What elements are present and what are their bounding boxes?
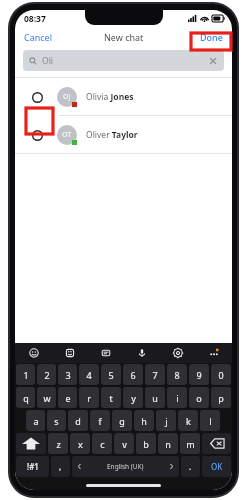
button[interactable]: s xyxy=(47,410,66,431)
button[interactable]: 7 xyxy=(145,364,165,385)
staticText: j xyxy=(165,415,168,427)
button[interactable]: w xyxy=(37,387,56,408)
button[interactable]: o xyxy=(189,387,209,408)
button[interactable]: r xyxy=(79,387,99,408)
button[interactable]: 3 xyxy=(58,364,77,385)
button[interactable]: f xyxy=(90,410,110,431)
staticText: m xyxy=(186,438,195,450)
button[interactable]: Settings xyxy=(160,343,196,363)
staticText: h xyxy=(141,415,147,427)
staticText: 0 xyxy=(218,369,224,381)
button[interactable]: !#1 xyxy=(16,456,49,477)
button[interactable]: Select Oliver Taylor xyxy=(15,116,232,153)
staticText: 9 xyxy=(196,369,202,381)
button[interactable]: a xyxy=(26,410,45,431)
staticText: Olivia Jones xyxy=(86,91,134,103)
staticText: z xyxy=(56,438,61,450)
button[interactable]: 0 xyxy=(211,364,231,385)
button[interactable]: y xyxy=(123,387,143,408)
button[interactable]: Clear search xyxy=(208,56,218,66)
staticText: 7 xyxy=(152,369,158,381)
staticText: p xyxy=(218,392,224,404)
staticText: . xyxy=(189,461,192,472)
staticText: g xyxy=(119,415,125,427)
other: Select Olivia Jones xyxy=(28,88,46,106)
staticText: 6 xyxy=(130,369,136,381)
button[interactable]: . xyxy=(181,456,200,477)
staticText: x xyxy=(78,438,83,450)
button[interactable]: Shift xyxy=(16,433,46,454)
staticText: r xyxy=(87,392,91,404)
staticText: n xyxy=(165,438,171,450)
button[interactable]: Done xyxy=(194,29,232,45)
staticText: a xyxy=(33,415,39,427)
staticText: OJ xyxy=(63,92,71,102)
button[interactable]: q xyxy=(16,387,35,408)
staticText: c xyxy=(100,438,105,450)
button[interactable]: Clipboard xyxy=(88,343,124,363)
button[interactable]: l xyxy=(200,410,220,431)
staticText: 5 xyxy=(108,369,114,381)
staticText: !#1 xyxy=(27,461,39,472)
button[interactable]: e xyxy=(58,387,77,408)
button[interactable]: 9 xyxy=(189,364,209,385)
staticText: o xyxy=(196,392,202,404)
staticText: 3 xyxy=(65,369,71,381)
button[interactable]: 2 xyxy=(37,364,56,385)
button[interactable]: n xyxy=(158,433,178,454)
staticText: 1 xyxy=(23,369,29,381)
button[interactable]: Voice input xyxy=(124,343,160,363)
button[interactable]: v xyxy=(114,433,134,454)
button[interactable]: 8 xyxy=(167,364,187,385)
button[interactable]: 5 xyxy=(101,364,121,385)
staticText: 08:37 xyxy=(24,13,46,25)
staticText: i xyxy=(176,392,179,404)
button[interactable]: More xyxy=(196,343,232,363)
button[interactable]: c xyxy=(92,433,112,454)
button[interactable]: k xyxy=(178,410,198,431)
button[interactable]: Stickers xyxy=(52,343,88,363)
staticText: OK xyxy=(211,461,223,472)
staticText: b xyxy=(143,438,149,450)
staticText: d xyxy=(75,415,81,427)
button[interactable]: i xyxy=(167,387,187,408)
button[interactable]: u xyxy=(145,387,165,408)
button[interactable]: 4 xyxy=(79,364,99,385)
staticText: v xyxy=(122,438,127,450)
button[interactable]: Oli xyxy=(23,50,224,71)
staticText: 2 xyxy=(44,369,50,381)
other: Select Oliver Taylor xyxy=(28,126,46,144)
button[interactable]: Backspace xyxy=(202,433,231,454)
staticText: u xyxy=(152,392,158,404)
button[interactable]: 6 xyxy=(123,364,143,385)
button[interactable]: g xyxy=(112,410,132,431)
staticText: 4 xyxy=(86,369,92,381)
button[interactable]: Select Olivia Jones xyxy=(15,78,232,115)
button[interactable]: Emoji xyxy=(15,343,52,363)
button[interactable]: p xyxy=(211,387,231,408)
staticText: , xyxy=(59,461,62,472)
button[interactable]: t xyxy=(101,387,121,408)
staticText: Done xyxy=(200,31,223,43)
button[interactable]: English (UK) xyxy=(72,456,179,477)
staticText: y xyxy=(131,392,136,404)
button[interactable]: j xyxy=(156,410,176,431)
staticText: s xyxy=(54,415,59,427)
button[interactable]: , xyxy=(51,456,70,477)
button[interactable]: b xyxy=(136,433,156,454)
button[interactable]: 1 xyxy=(16,364,35,385)
staticText: t xyxy=(109,392,113,404)
staticText: Oliver Taylor xyxy=(86,129,138,141)
button[interactable]: z xyxy=(48,433,68,454)
button[interactable]: x xyxy=(70,433,90,454)
button[interactable]: Cancel xyxy=(15,29,59,45)
staticText: English (UK) xyxy=(107,462,144,471)
button[interactable]: d xyxy=(68,410,88,431)
staticText: e xyxy=(65,392,71,404)
staticText: Cancel xyxy=(24,31,53,43)
button[interactable]: h xyxy=(134,410,154,431)
button[interactable]: m xyxy=(180,433,200,454)
staticText: l xyxy=(209,415,212,427)
staticText: OT xyxy=(62,130,72,140)
button[interactable]: OK xyxy=(202,456,231,477)
